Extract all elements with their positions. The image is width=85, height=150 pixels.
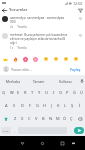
button[interactable]: Büyük harf	[0, 112, 11, 125]
button[interactable]: C	[26, 112, 33, 125]
button[interactable]: D	[18, 99, 26, 112]
button[interactable]: J	[48, 99, 55, 112]
button[interactable]: Q	[0, 86, 8, 99]
staticText: L	[64, 103, 67, 108]
button[interactable]: R	[22, 86, 29, 99]
staticText: I	[53, 90, 55, 95]
button[interactable]: Ü	[78, 86, 85, 99]
staticText: J	[51, 103, 53, 108]
staticText: Yorumlar	[9, 7, 28, 13]
button[interactable]: Taç	[2, 56, 8, 62]
button[interactable]: Tamam	[26, 75, 52, 86]
staticText: P	[66, 90, 69, 95]
button[interactable]: S	[10, 99, 18, 112]
button[interactable]: G	[34, 99, 41, 112]
button[interactable]: U	[43, 86, 50, 99]
button[interactable]: T	[29, 86, 36, 99]
staticText: Merhaba	[6, 79, 20, 83]
button[interactable]: Ana ekran	[37, 138, 47, 148]
staticText: U	[45, 90, 48, 95]
button[interactable]: K	[55, 99, 62, 112]
button[interactable]: Z	[11, 112, 19, 125]
button[interactable]: ?123	[1, 127, 11, 134]
button[interactable]: Gülen yüz	[53, 56, 59, 62]
button[interactable]: Ş	[69, 99, 76, 112]
button[interactable]: Sil	[75, 112, 85, 125]
staticText: Yorum ekle...	[11, 67, 32, 72]
staticText: Paylaş	[70, 67, 81, 72]
button[interactable]: Gönder	[74, 127, 84, 134]
staticText: B	[42, 116, 45, 121]
staticText: ?123	[3, 129, 9, 132]
button[interactable]: Gülen yüz	[63, 56, 69, 62]
button[interactable]: Çiçek	[32, 56, 38, 62]
staticText: 2s Yanıtla	[10, 25, 27, 29]
staticText: İ	[79, 103, 81, 108]
staticText: Q	[2, 90, 6, 95]
button[interactable]: I	[50, 86, 57, 99]
button[interactable]: F	[26, 99, 34, 112]
staticText: N	[49, 116, 53, 121]
button[interactable]: Ö	[61, 112, 68, 125]
button[interactable]: Filtrele	[75, 6, 85, 14]
button[interactable]: W	[8, 86, 15, 99]
button[interactable]: Gülen yüz	[73, 56, 79, 62]
staticText: Ç	[70, 116, 73, 121]
staticText: Ö	[63, 116, 67, 121]
button[interactable]: H	[41, 99, 48, 112]
button[interactable]: Klavyeyi gizle	[69, 139, 77, 147]
staticText: Z	[14, 116, 17, 121]
button[interactable]: N	[47, 112, 54, 125]
staticText: E	[17, 90, 20, 95]
button[interactable]: M	[54, 112, 61, 125]
button[interactable]: Beğen	[78, 16, 83, 21]
button[interactable]: sanmedya sanmedyaa · sanmedyaa 000	[0, 16, 85, 29]
staticText: R	[24, 90, 27, 95]
button[interactable]: Ç	[68, 112, 75, 125]
staticText: .	[70, 128, 71, 133]
button[interactable]: Y	[36, 86, 43, 99]
button[interactable]: B	[40, 112, 47, 125]
button[interactable]: A	[2, 99, 10, 112]
button[interactable]: Çiçek	[22, 56, 28, 62]
staticText: Tamam	[33, 79, 45, 83]
button[interactable]: Beğen	[78, 33, 83, 38]
button[interactable]: Ateş	[12, 56, 18, 62]
button[interactable]: Virgül	[12, 127, 17, 134]
staticText: X	[21, 116, 24, 121]
button[interactable]: Merhaba	[0, 75, 26, 86]
button[interactable]: Ğ	[71, 86, 78, 99]
staticText: O	[59, 90, 63, 95]
button[interactable]: X	[19, 112, 26, 125]
staticText: ,	[14, 128, 15, 133]
button[interactable]: O	[57, 86, 64, 99]
button[interactable]: İ	[76, 99, 83, 112]
button[interactable]: Kullanıcı	[52, 75, 78, 86]
staticText: V	[35, 116, 38, 121]
staticText: 1s Yanıtla	[10, 46, 27, 50]
staticText: Ü	[80, 90, 83, 95]
button[interactable]: Gülen yüz	[43, 56, 49, 62]
button[interactable]: Nokta	[68, 127, 73, 134]
button[interactable]: Sesle yaz	[78, 75, 85, 86]
button[interactable]: mehmet Bunuşahsene çok kazandınız eliniz…	[0, 33, 85, 50]
button[interactable]: Geri	[0, 6, 9, 14]
button[interactable]: L	[62, 99, 69, 112]
staticText: K	[57, 103, 60, 108]
button[interactable]: Paylaş	[69, 66, 82, 73]
button[interactable]: V	[33, 112, 40, 125]
staticText: Y	[38, 90, 41, 95]
staticText: W	[10, 90, 14, 95]
staticText: Ş	[71, 103, 74, 108]
staticText: M	[56, 116, 60, 121]
button[interactable]: Geri	[17, 138, 27, 148]
button[interactable]: P	[64, 86, 71, 99]
button[interactable]: Son uygulamalar	[57, 138, 67, 148]
staticText: F	[29, 103, 32, 108]
staticText: Kullanıcı	[59, 79, 72, 83]
staticText: mehmet Bunuşahsene çok kazandınız eliniz…	[10, 33, 68, 45]
staticText: A	[5, 103, 8, 108]
button[interactable]: E	[15, 86, 22, 99]
staticText: sanmedya sanmedyaa · sanmedyaa 000	[10, 16, 65, 24]
